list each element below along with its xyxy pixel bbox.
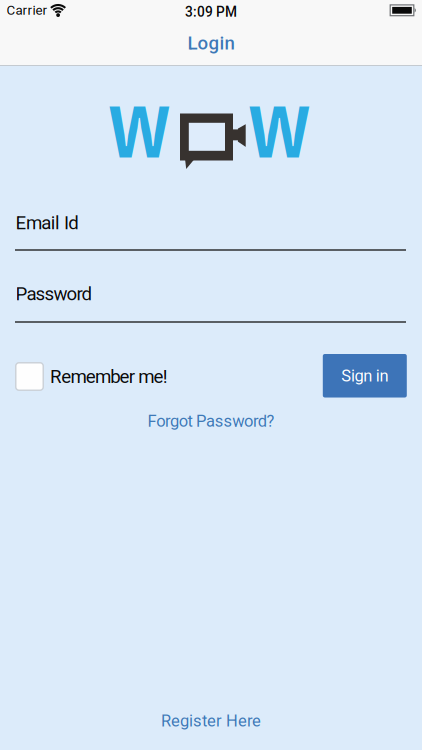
button[interactable]: Remember me! [15,362,168,391]
button[interactable]: Sign in [323,354,407,397]
button[interactable]: Forgot Password? [143,411,278,431]
staticText: W [107,84,171,177]
staticText: Remember me! [50,366,168,387]
staticText: Login [187,32,234,54]
staticText: Email Id [15,212,79,234]
staticText: Forgot Password? [147,411,274,431]
staticText: Register Here [161,711,261,731]
staticText: Password [15,283,92,305]
staticText: W [248,84,312,177]
staticText: Carrier [6,2,47,18]
staticText: Sign in [341,366,388,385]
button[interactable]: Register Here [157,711,265,731]
staticText: 3:09 PM [185,4,237,20]
